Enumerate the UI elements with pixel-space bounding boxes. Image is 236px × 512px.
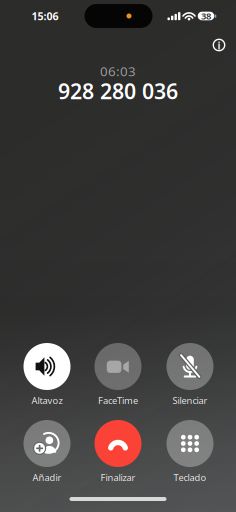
staticText: 06:03 (100, 62, 136, 80)
staticText: Altavoz (31, 394, 62, 407)
staticText: Finalizar (100, 471, 135, 484)
staticText: i (217, 38, 220, 52)
button[interactable]: Finalizar (83, 420, 153, 484)
button[interactable]: Teclado (155, 420, 225, 484)
staticText: Silenciar (172, 394, 207, 407)
staticText: Teclado (173, 471, 206, 484)
button[interactable]: Añadir (12, 420, 82, 484)
staticText: 928 280 036 (58, 77, 178, 105)
staticText: 15:06 (31, 9, 58, 23)
staticText: 38 (201, 10, 211, 22)
button[interactable]: FaceTime (83, 343, 153, 407)
staticText: Añadir (32, 471, 61, 484)
button[interactable]: Call info (204, 30, 234, 60)
button[interactable]: Altavoz (12, 343, 82, 407)
button[interactable]: Silenciar (155, 343, 225, 407)
staticText: FaceTime (98, 394, 138, 407)
